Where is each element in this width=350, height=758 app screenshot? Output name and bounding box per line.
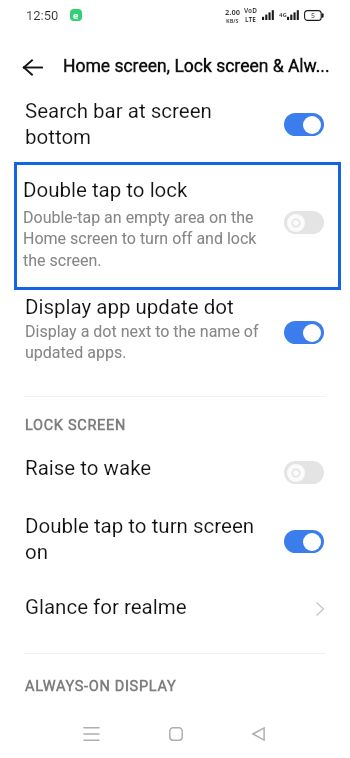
staticText: 12:50: [26, 8, 59, 23]
button[interactable]: [0, 508, 350, 560]
button[interactable]: Recent apps: [65, 707, 118, 758]
button[interactable]: [0, 93, 350, 145]
button[interactable]: Toggle off: [284, 461, 324, 484]
button[interactable]: Toggle on: [284, 113, 324, 136]
button[interactable]: [0, 588, 350, 634]
staticText: ALWAYS-ON DISPLAY: [25, 678, 177, 695]
staticText: VoD: [244, 6, 257, 15]
button[interactable]: [0, 450, 350, 502]
staticText: Display app update dot: [25, 295, 234, 319]
staticText: 4G: [279, 11, 287, 19]
button[interactable]: Toggle on: [284, 530, 324, 553]
staticText: Search bar at screen bottom: [25, 99, 230, 149]
button[interactable]: Back: [232, 707, 285, 758]
staticText: Double tap to turn screen on: [25, 514, 277, 564]
staticText: 2.00: [225, 7, 240, 17]
button[interactable]: Double tap to lock: [14, 162, 341, 290]
staticText: LOCK SCREEN: [25, 417, 126, 434]
staticText: 5: [311, 11, 316, 21]
staticText: KB/S: [226, 17, 239, 24]
button[interactable]: Back: [4, 39, 60, 95]
staticText: LTE: [245, 15, 256, 24]
button[interactable]: Home: [149, 707, 202, 758]
staticText: Display a dot next to the name of update…: [25, 322, 277, 362]
staticText: Glance for realme: [25, 595, 187, 619]
staticText: Double tap to lock: [23, 178, 188, 202]
staticText: Home screen, Lock screen & Alw...: [63, 56, 330, 77]
button[interactable]: [0, 289, 350, 369]
staticText: Raise to wake: [25, 456, 152, 480]
staticText: Double-tap an empty area on the Home scr…: [23, 208, 259, 270]
button[interactable]: Toggle on: [284, 321, 324, 344]
button[interactable]: Toggle off: [284, 211, 324, 234]
staticText: e: [73, 9, 79, 21]
